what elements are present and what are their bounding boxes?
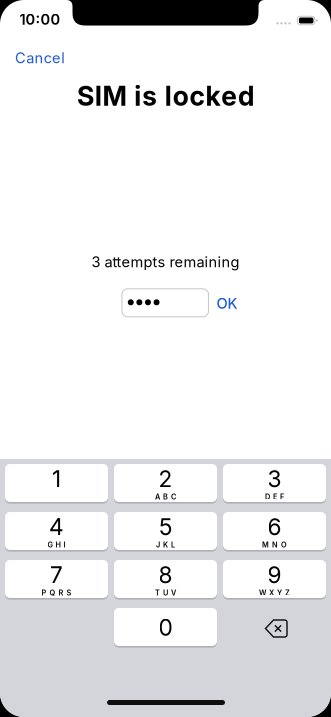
staticText: 1 [52, 465, 61, 493]
button[interactable]: OK [216, 295, 237, 312]
button[interactable]: Cancel [15, 49, 65, 67]
staticText: 8 [158, 561, 172, 589]
staticText: T U V [155, 588, 176, 597]
staticText: 0 [158, 614, 172, 641]
button[interactable]: 0 [114, 607, 217, 647]
button[interactable]: 2 [114, 463, 217, 503]
staticText: 6 [267, 513, 281, 541]
staticText: J K L [156, 540, 175, 549]
staticText: 4 [49, 513, 64, 541]
staticText: P Q R S [41, 588, 71, 597]
staticText: 5 [159, 513, 172, 541]
staticText: A B C [155, 492, 176, 501]
button[interactable]: 4 [5, 511, 108, 551]
staticText: 3 [267, 465, 281, 493]
staticText: 2 [158, 465, 172, 493]
button[interactable]: 3 [223, 463, 326, 503]
staticText: SIM is locked [77, 80, 254, 112]
button[interactable]: 1 [5, 463, 108, 503]
button[interactable]: Enter PIN [121, 288, 209, 317]
button[interactable]: 8 [114, 559, 217, 599]
staticText: OK [216, 295, 237, 312]
button[interactable]: 7 [5, 559, 108, 599]
staticText: Cancel [15, 49, 65, 67]
button[interactable]: 9 [223, 559, 326, 599]
button[interactable]: 5 [114, 511, 217, 551]
staticText: W X Y Z [259, 588, 290, 597]
button[interactable]: Delete [223, 607, 326, 647]
staticText: G H I [47, 540, 65, 549]
staticText: 3 attempts remaining [91, 253, 239, 271]
staticText: 9 [267, 561, 281, 589]
staticText: D E F [265, 492, 284, 501]
staticText: 10:00 [19, 11, 60, 28]
staticText: M N O [262, 540, 287, 549]
button[interactable]: 6 [223, 511, 326, 551]
staticText: 7 [50, 561, 63, 589]
